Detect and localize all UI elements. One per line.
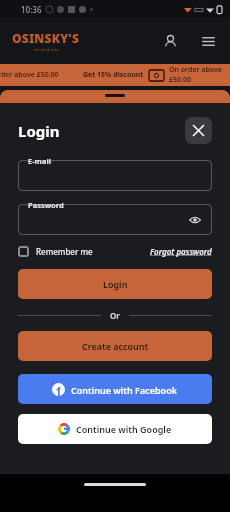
button[interactable]: Remember me [18,246,93,257]
staticText: Login [18,121,60,141]
staticText: Password [28,200,64,210]
staticText: Get 15% discount [83,70,144,80]
staticText: E-mail [28,156,51,166]
button[interactable]: OSINSKY'S [12,30,80,52]
button[interactable]: Continue with Google [18,414,212,444]
button[interactable]: Login [18,269,212,299]
button[interactable]: Continue with Facebook [18,374,212,404]
button[interactable]: Close [185,117,212,144]
staticText: Create account [82,340,149,352]
staticText: Continue with Facebook [71,384,178,396]
staticText: Continue with Google [76,423,172,435]
staticText: Login [103,278,128,290]
button[interactable]: Show password [187,212,203,228]
staticText: rder above £50.00 [0,70,59,80]
staticText: Remember me [36,246,93,257]
button[interactable]: Account [158,29,182,53]
staticText: eat drink take [34,47,59,52]
staticText: 10:36 [21,4,42,15]
button[interactable]: Password [18,204,212,235]
staticText: Forgot password [150,246,212,257]
button[interactable]: Menu [196,29,220,53]
button[interactable]: Forgot password [150,246,212,257]
button[interactable]: E-mail [18,160,212,191]
staticText: OSINSKY'S [12,30,80,46]
button[interactable]: rder above £50.00 [0,64,230,86]
button[interactable]: Create account [18,331,212,361]
staticText: Or [110,310,120,321]
staticText: On order above £50.00 [169,65,230,85]
